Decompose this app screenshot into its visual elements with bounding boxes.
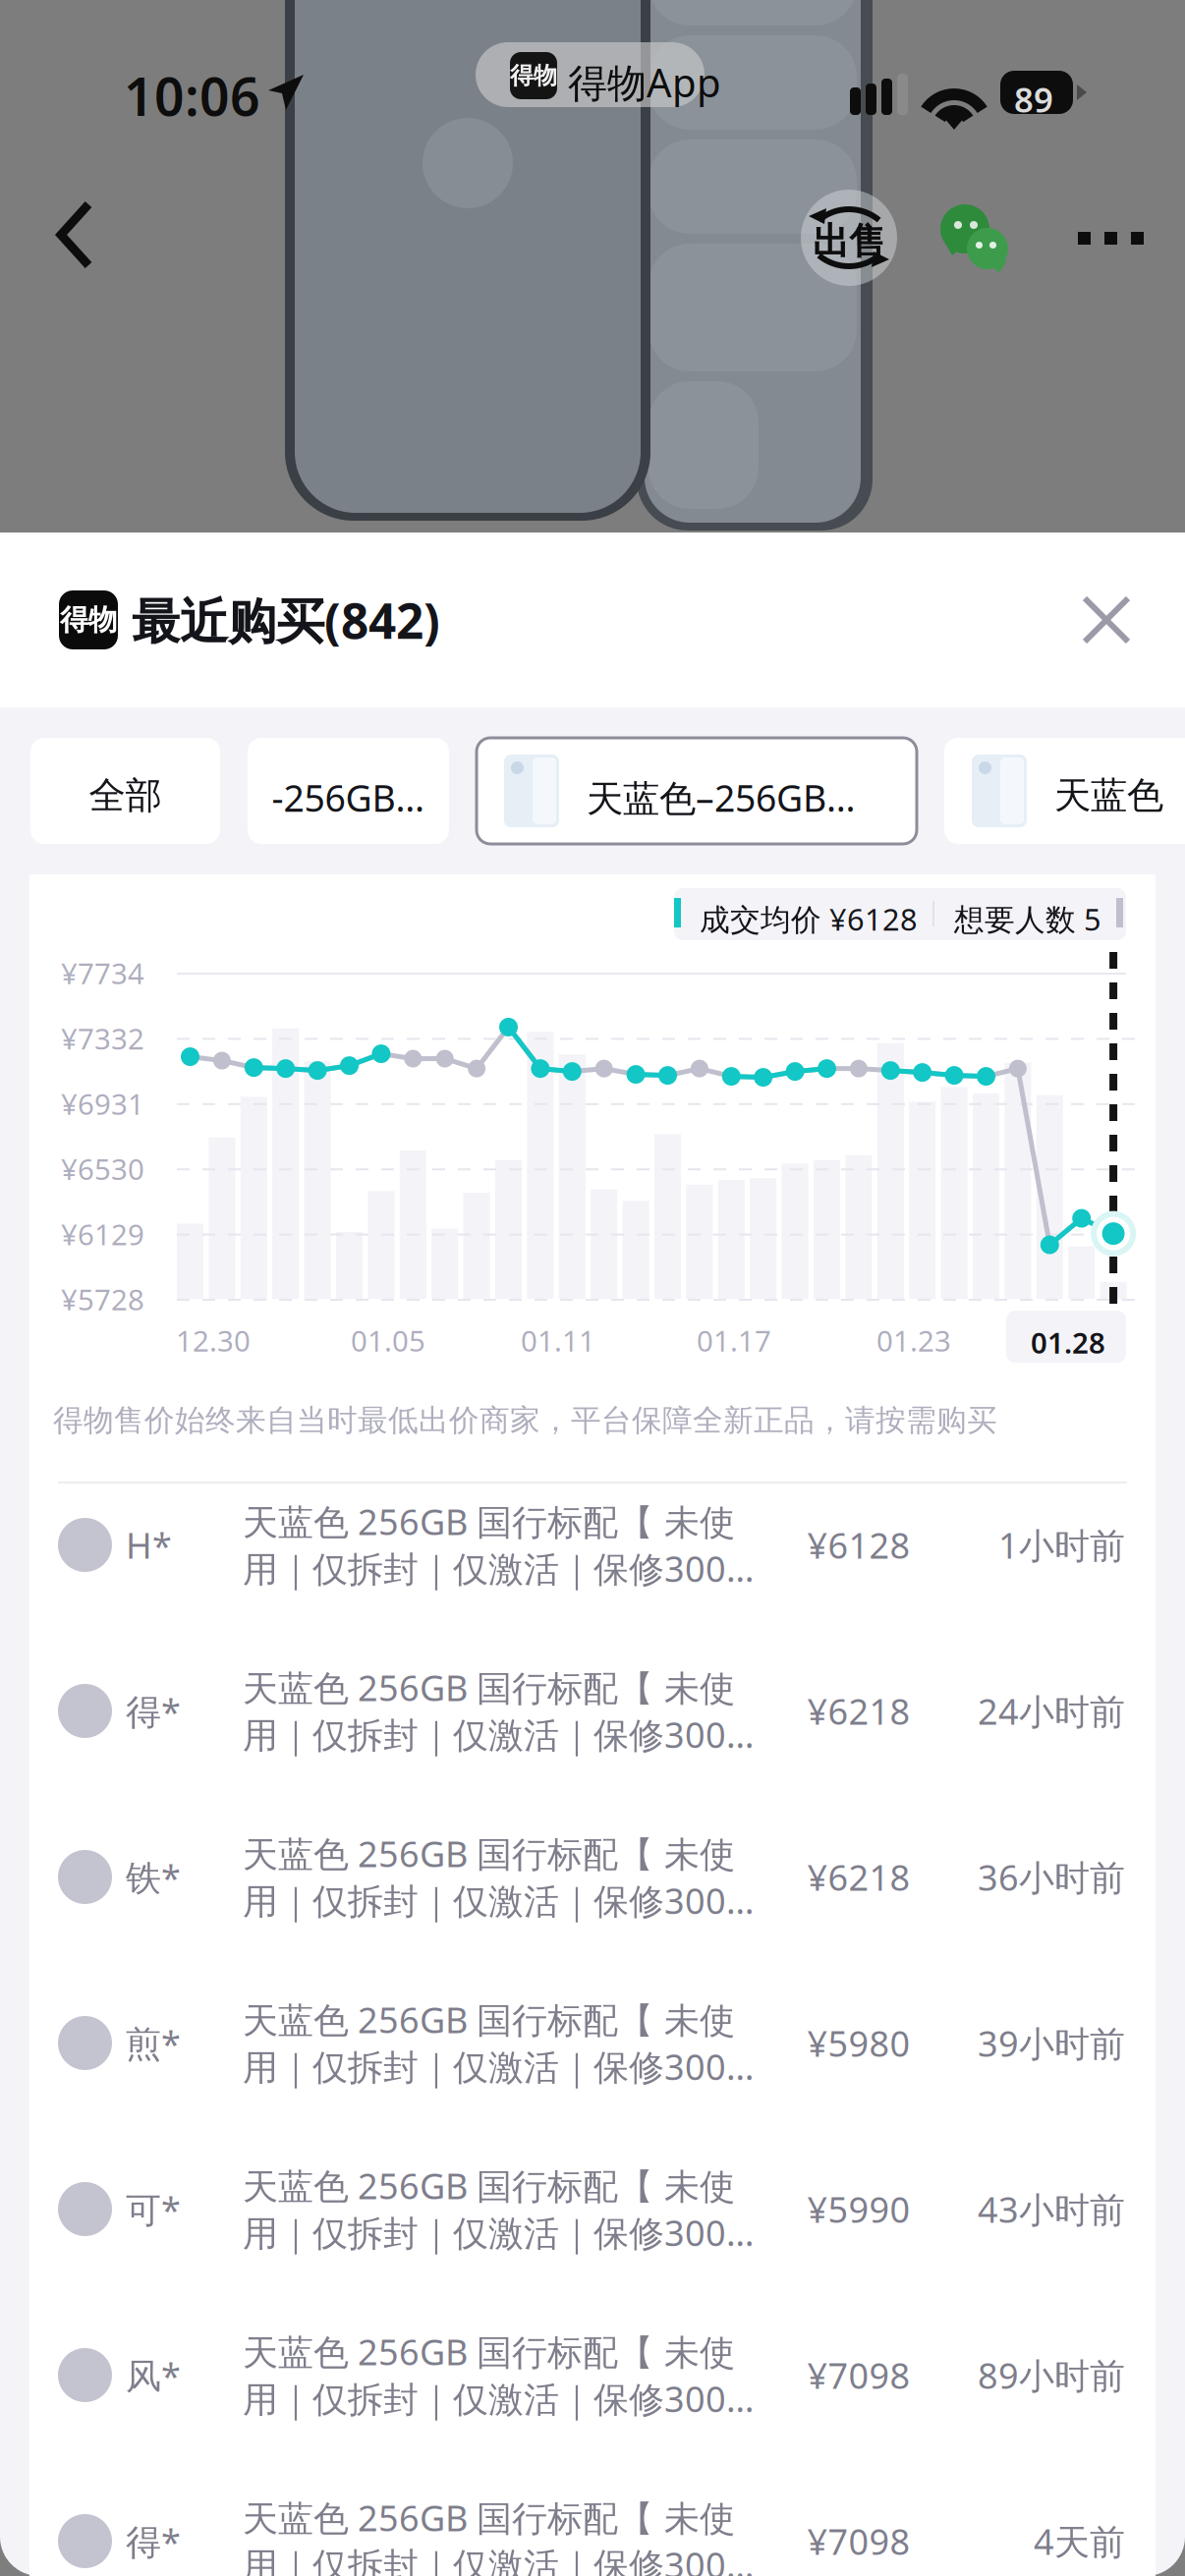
staticText: ¥6530: [61, 1150, 144, 1188]
button[interactable]: 分享到微信: [940, 204, 1011, 275]
staticText: 01.23: [876, 1321, 951, 1360]
staticText: 天蓝色: [1054, 773, 1163, 818]
staticText: 1小时前: [998, 1521, 1125, 1568]
staticText: 天蓝色 256GB 国行标配【 未使用｜仅拆封｜仅激活｜保修300…: [243, 1996, 754, 2090]
staticText: ¥6931: [61, 1084, 144, 1123]
staticText: 得物: [60, 602, 117, 638]
staticText: 出售: [813, 219, 885, 264]
button[interactable]: 得*: [29, 1628, 1156, 1794]
staticText: 24小时前: [978, 1687, 1125, 1734]
staticText: 01.11: [521, 1321, 595, 1360]
staticText: 01.28: [1031, 1323, 1105, 1362]
staticText: ¥6218: [807, 1687, 910, 1734]
staticText: 天蓝色 256GB 国行标配【 未使用｜仅拆封｜仅激活｜保修300…: [243, 1498, 754, 1592]
button[interactable]: 更多: [1056, 210, 1153, 266]
staticText: 煎*: [126, 2020, 181, 2066]
staticText: ¥6129: [61, 1215, 144, 1253]
button[interactable]: Close: [1057, 571, 1156, 669]
staticText: 天蓝色–256GB…: [587, 773, 856, 822]
staticText: ¥7098: [807, 2518, 910, 2565]
staticText: ¥7332: [61, 1019, 144, 1058]
button[interactable]: 可*: [29, 2126, 1156, 2292]
staticText: 12.30: [176, 1321, 251, 1360]
staticText: 得*: [126, 2518, 181, 2565]
staticText: ¥5980: [807, 2020, 910, 2066]
staticText: 可*: [126, 2186, 181, 2233]
button[interactable]: 天蓝色–256GB…: [477, 738, 917, 844]
staticText: ¥7098: [807, 2352, 910, 2399]
button[interactable]: 出售: [801, 190, 897, 286]
staticText: 天蓝色 256GB 国行标配【 未使用｜仅拆封｜仅激活｜保修300…: [243, 2162, 754, 2256]
staticText: 天蓝色 256GB 国行标配【 未使用｜仅拆封｜仅激活｜保修300…: [243, 1664, 754, 1758]
staticText: 天蓝色 256GB 国行标配【 未使用｜仅拆封｜仅激活｜保修300…: [243, 1830, 754, 1924]
staticText: 01.17: [697, 1321, 771, 1360]
button[interactable]: -256GB…: [248, 738, 449, 844]
staticText: 43小时前: [978, 2186, 1125, 2233]
staticText: H*: [126, 1521, 172, 1568]
staticText: 风*: [126, 2352, 181, 2399]
staticText: ¥7734: [61, 954, 144, 992]
button[interactable]: 全部: [30, 738, 220, 844]
staticText: ¥6128: [807, 1521, 910, 1568]
staticText: ¥5728: [61, 1280, 144, 1318]
button[interactable]: 铁*: [29, 1794, 1156, 1960]
staticText: 得物: [510, 61, 557, 90]
staticText: 天蓝色 256GB 国行标配【 未使用｜仅拆封｜仅激活｜保修300…: [243, 2494, 754, 2576]
staticText: 天蓝色 256GB 国行标配【 未使用｜仅拆封｜仅激活｜保修300…: [243, 2328, 754, 2422]
staticText: 得物售价始终来自当时最低出价商家，平台保障全新正品，请按需购买: [53, 1402, 997, 1439]
staticText: 全部: [89, 773, 162, 818]
staticText: 得物App: [568, 56, 721, 108]
staticText: ¥6218: [807, 1854, 910, 1900]
staticText: 成交均价 ¥6128: [700, 899, 918, 939]
staticText: 得*: [126, 1687, 181, 1734]
staticText: 01.05: [351, 1321, 425, 1360]
staticText: 想要人数 5: [954, 899, 1101, 939]
staticText: 铁*: [126, 1854, 181, 1900]
staticText: 36小时前: [978, 1854, 1125, 1900]
button[interactable]: H*: [29, 1462, 1156, 1628]
staticText: 89: [1014, 77, 1053, 122]
button[interactable]: 煎*: [29, 1960, 1156, 2126]
staticText: 10:06: [124, 61, 260, 130]
button[interactable]: Back: [47, 191, 126, 279]
staticText: 最近购买(842): [132, 588, 440, 652]
button[interactable]: 风*: [29, 2292, 1156, 2458]
staticText: 39小时前: [978, 2020, 1125, 2066]
staticText: 4天前: [1034, 2518, 1125, 2565]
button[interactable]: 得*: [29, 2458, 1156, 2576]
staticText: ¥5990: [807, 2186, 910, 2233]
button[interactable]: 天蓝色: [944, 738, 1185, 844]
staticText: -256GB…: [272, 773, 425, 822]
staticText: 89小时前: [978, 2352, 1125, 2399]
